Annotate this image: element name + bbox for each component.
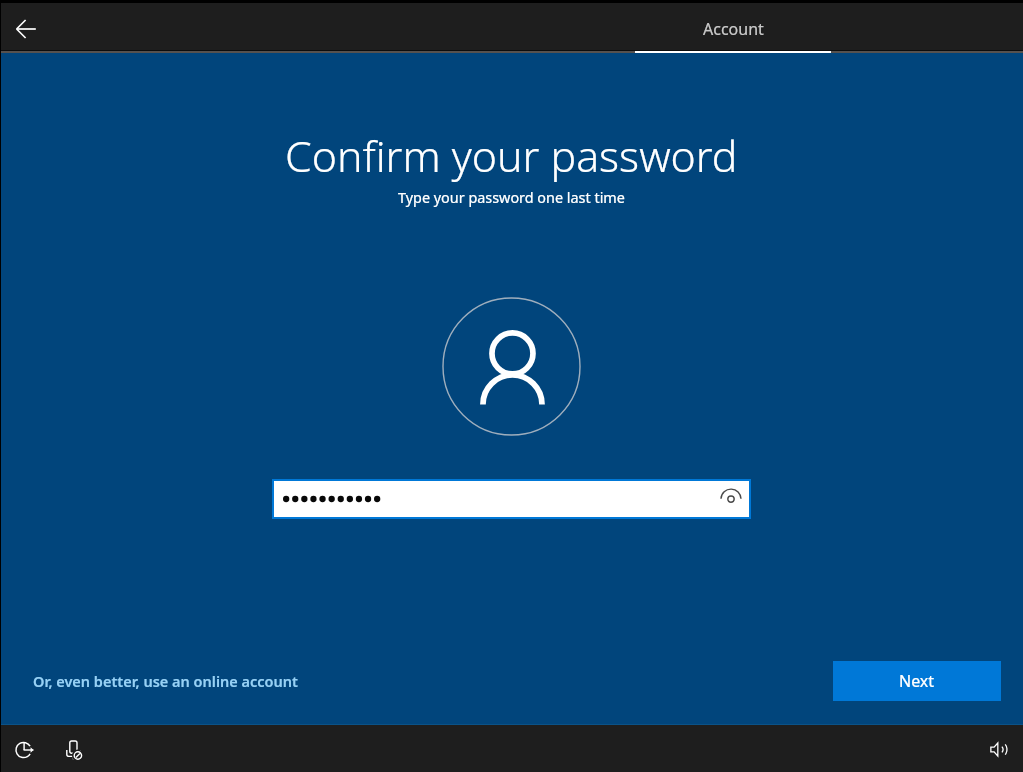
staticText: Account bbox=[703, 18, 764, 40]
staticText: Or, even better, use an online account bbox=[33, 671, 298, 691]
button[interactable]: Reveal password bbox=[274, 481, 749, 517]
staticText: Next bbox=[899, 670, 935, 692]
staticText: Confirm your password bbox=[285, 126, 738, 184]
button[interactable]: Microphone off bbox=[53, 730, 93, 770]
button[interactable]: Reveal password bbox=[711, 481, 749, 517]
staticText: Type your password one last time bbox=[398, 188, 625, 208]
button[interactable]: Account bbox=[635, 3, 831, 50]
button[interactable]: Sign out bbox=[5, 730, 45, 770]
button[interactable]: Or, even better, use an online account bbox=[33, 671, 298, 691]
button[interactable]: Volume bbox=[978, 729, 1018, 769]
button[interactable]: Next bbox=[833, 661, 1001, 701]
button[interactable]: Back bbox=[5, 8, 47, 50]
